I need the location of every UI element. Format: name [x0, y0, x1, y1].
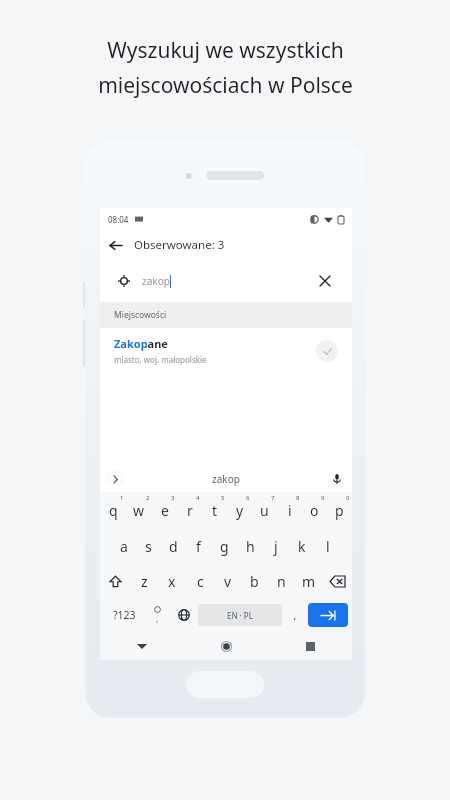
button[interactable]: y — [227, 492, 252, 528]
staticText: EN · PL — [227, 610, 253, 621]
button[interactable]: i — [277, 492, 302, 528]
staticText: . — [293, 607, 297, 623]
button[interactable]: q — [100, 492, 126, 528]
staticText: 5 — [221, 494, 225, 502]
staticText: f — [196, 537, 201, 556]
staticText: , — [156, 613, 159, 624]
button[interactable]: Obserwuj — [316, 340, 338, 362]
staticText: d — [169, 537, 178, 556]
staticText: r — [187, 501, 193, 520]
button[interactable]: Emoji — [144, 598, 170, 632]
button[interactable]: c — [186, 564, 214, 598]
staticText: x — [168, 572, 176, 591]
button[interactable]: Moja lokalizacja — [108, 265, 344, 297]
staticText: zakop — [142, 274, 170, 288]
staticText: h — [246, 537, 255, 556]
button[interactable]: Ekran główny — [184, 632, 268, 660]
button[interactable]: w — [126, 492, 152, 528]
button[interactable]: Wstecz — [100, 632, 184, 660]
staticText: p — [335, 501, 344, 520]
staticText: zakop — [212, 472, 240, 486]
button[interactable]: EN · PL — [198, 604, 282, 626]
staticText: 08:04 — [108, 214, 129, 225]
button[interactable]: Zmień język — [170, 598, 198, 632]
button[interactable]: z — [130, 564, 158, 598]
staticText: miasto, woj. małopolskie — [114, 354, 207, 365]
button[interactable]: Enter — [308, 603, 348, 627]
button[interactable]: v — [214, 564, 241, 598]
staticText: 6 — [246, 494, 250, 502]
button[interactable]: Wstecz — [100, 230, 130, 260]
staticText: v — [224, 572, 232, 591]
staticText: l — [326, 537, 330, 556]
staticText: 4 — [196, 494, 200, 502]
button[interactable]: ?123 — [104, 598, 144, 632]
button[interactable]: a — [111, 528, 136, 564]
staticText: q — [109, 501, 118, 520]
staticText: Zakopane — [114, 336, 168, 351]
other: Moja lokalizacja — [118, 275, 130, 287]
staticText: 8 — [296, 494, 300, 502]
staticText: w — [133, 501, 145, 520]
button[interactable]: Ostatnie — [268, 632, 352, 660]
staticText: ?123 — [113, 608, 136, 622]
staticText: j — [274, 537, 278, 556]
staticText: a — [120, 537, 128, 556]
button[interactable]: r — [177, 492, 202, 528]
staticText: Wyszukuj we wszystkich — [107, 36, 344, 65]
staticText: y — [236, 501, 244, 520]
staticText: m — [302, 572, 316, 591]
button[interactable]: k — [289, 528, 315, 564]
staticText: Miejscowości — [114, 309, 167, 321]
staticText: t — [212, 501, 218, 520]
staticText: i — [288, 501, 292, 520]
staticText: s — [145, 537, 152, 556]
button[interactable]: g — [211, 528, 237, 564]
button[interactable]: Więcej — [106, 470, 124, 488]
staticText: k — [298, 537, 306, 556]
button[interactable]: p — [327, 492, 352, 528]
button[interactable]: Zakopane — [100, 328, 352, 373]
button[interactable]: Backspace — [322, 564, 352, 598]
button[interactable]: d — [161, 528, 186, 564]
staticText: 3 — [171, 494, 175, 502]
staticText: 9 — [321, 494, 325, 502]
button[interactable]: t — [202, 492, 227, 528]
button[interactable]: u — [252, 492, 277, 528]
button[interactable]: e — [152, 492, 177, 528]
staticText: 7 — [271, 494, 275, 502]
staticText: u — [260, 501, 269, 520]
button[interactable]: j — [263, 528, 289, 564]
button[interactable]: Mikrofon — [328, 470, 346, 488]
button[interactable]: Wyczyść — [316, 272, 334, 290]
button[interactable]: Shift — [100, 564, 130, 598]
staticText: n — [277, 572, 286, 591]
button[interactable]: o — [302, 492, 327, 528]
staticText: miejscowościach w Polsce — [98, 71, 353, 100]
staticText: 0 — [346, 494, 350, 502]
button[interactable]: f — [186, 528, 211, 564]
staticText: z — [141, 572, 148, 591]
button[interactable]: x — [158, 564, 186, 598]
staticText: o — [310, 501, 319, 520]
staticText: 2 — [146, 494, 150, 502]
button[interactable]: s — [136, 528, 161, 564]
staticText: c — [197, 572, 204, 591]
button[interactable]: b — [241, 564, 268, 598]
button[interactable]: m — [295, 564, 322, 598]
staticText: 1 — [120, 494, 124, 502]
staticText: b — [250, 572, 259, 591]
button[interactable]: h — [237, 528, 263, 564]
staticText: Obserwowane: 3 — [134, 237, 225, 253]
button[interactable]: . — [282, 598, 308, 632]
button[interactable]: l — [315, 528, 341, 564]
staticText: g — [220, 537, 229, 556]
staticText: e — [161, 501, 169, 520]
button[interactable]: n — [268, 564, 295, 598]
